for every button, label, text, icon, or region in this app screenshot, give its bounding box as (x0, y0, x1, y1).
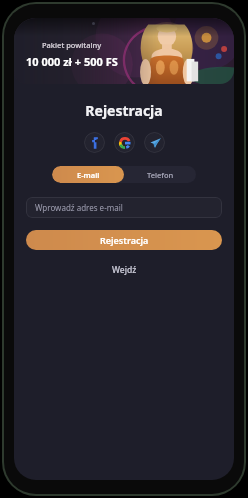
button[interactable]: Telefon (124, 166, 196, 183)
button[interactable]: Sign up with Facebook (84, 132, 105, 153)
staticText: Pakiet powitalny (42, 40, 102, 50)
button[interactable]: Wprowadź adres e-mail (26, 197, 222, 218)
button[interactable]: Wejdź (102, 262, 147, 278)
staticText: Rejestracja (14, 101, 234, 120)
button[interactable]: E-mail (52, 166, 124, 183)
button[interactable]: Sign up with Google (114, 132, 135, 153)
staticText: 10 000 zł + 500 FS (26, 54, 118, 69)
button[interactable]: Rejestracja (26, 230, 222, 250)
staticText: Wejdź (112, 264, 137, 276)
staticText: E-mail (77, 170, 100, 180)
staticText: Telefon (147, 170, 174, 180)
staticText: Wprowadź adres e-mail (35, 202, 123, 213)
staticText: Rejestracja (100, 234, 149, 246)
button[interactable]: Sign up with Telegram (144, 132, 165, 153)
